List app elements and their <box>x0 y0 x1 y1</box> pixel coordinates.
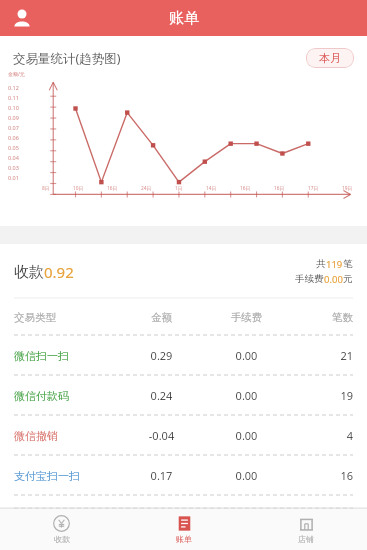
staticText: 19日 <box>342 185 353 192</box>
staticText: 0.06 <box>8 134 19 141</box>
button[interactable]: 收款 <box>0 509 123 550</box>
staticText: 0.01 <box>8 174 19 181</box>
button[interactable]: Profile <box>6 2 38 34</box>
staticText: 0.04 <box>8 154 19 161</box>
staticText: 本月 <box>319 51 341 65</box>
staticText: 21 <box>289 348 353 363</box>
staticText: 微信付款码 <box>14 389 69 403</box>
staticText: 119 <box>326 258 343 271</box>
staticText: 10日 <box>73 185 84 192</box>
staticText: 14日 <box>206 185 217 192</box>
staticText: 账单 <box>176 534 192 544</box>
staticText: 0.92 <box>44 262 74 282</box>
staticText: 0.07 <box>8 124 19 131</box>
staticText: 0.29 <box>119 348 204 363</box>
staticText: 笔数 <box>289 311 353 324</box>
staticText: 账单 <box>169 9 199 28</box>
staticText: 微信扫一扫 <box>14 349 69 363</box>
staticText: 0.03 <box>8 164 19 171</box>
button[interactable]: 交易类型 <box>14 311 353 324</box>
staticText: 笔 <box>343 258 353 270</box>
staticText: 店铺 <box>298 534 314 544</box>
staticText: 17日 <box>308 185 319 192</box>
staticText: 支付宝扫一扫 <box>14 469 80 483</box>
button[interactable]: 账单 <box>123 509 245 550</box>
staticText: 0.00 <box>324 273 343 286</box>
staticText: 0.11 <box>8 94 19 101</box>
staticText: 16 <box>289 468 353 483</box>
staticText: 19 <box>289 388 353 403</box>
button[interactable]: 微信撤销 <box>14 428 353 443</box>
staticText: 共 <box>316 258 326 270</box>
staticText: 16日 <box>274 185 285 192</box>
staticText: 金额/元 <box>8 71 25 78</box>
staticText: 0.24 <box>119 388 204 403</box>
staticText: 0.09 <box>8 114 19 121</box>
staticText: 16日 <box>240 185 251 192</box>
staticText: 0.00 <box>204 388 289 403</box>
staticText: 收款 <box>14 263 44 282</box>
staticText: 手续费 <box>204 311 289 324</box>
staticText: 交易类型 <box>14 311 56 324</box>
button[interactable]: 本月 <box>306 48 354 68</box>
staticText: 8日 <box>42 185 50 192</box>
staticText: 0.12 <box>8 84 19 91</box>
staticText: 24日 <box>141 185 152 192</box>
staticText: 0.00 <box>204 428 289 443</box>
staticText: 元 <box>343 273 353 285</box>
staticText: 金额 <box>119 311 204 324</box>
button[interactable]: 支付宝扫一扫 <box>14 468 353 483</box>
staticText: 0.17 <box>119 468 204 483</box>
button[interactable]: 微信扫一扫 <box>14 348 353 363</box>
staticText: -0.04 <box>119 428 204 443</box>
staticText: 1日 <box>175 185 183 192</box>
staticText: 收款 <box>54 534 70 544</box>
staticText: 0.05 <box>8 144 19 151</box>
staticText: 交易量统计(趋势图) <box>13 50 121 67</box>
staticText: 4 <box>289 428 353 443</box>
staticText: 16日 <box>107 185 118 192</box>
staticText: 手续费 <box>295 273 324 285</box>
button[interactable]: 微信付款码 <box>14 388 353 403</box>
staticText: 0.00 <box>204 348 289 363</box>
staticText: 微信撤销 <box>14 429 58 443</box>
staticText: 0.00 <box>204 468 289 483</box>
staticText: 0.10 <box>8 104 19 111</box>
button[interactable]: 店铺 <box>245 509 367 550</box>
